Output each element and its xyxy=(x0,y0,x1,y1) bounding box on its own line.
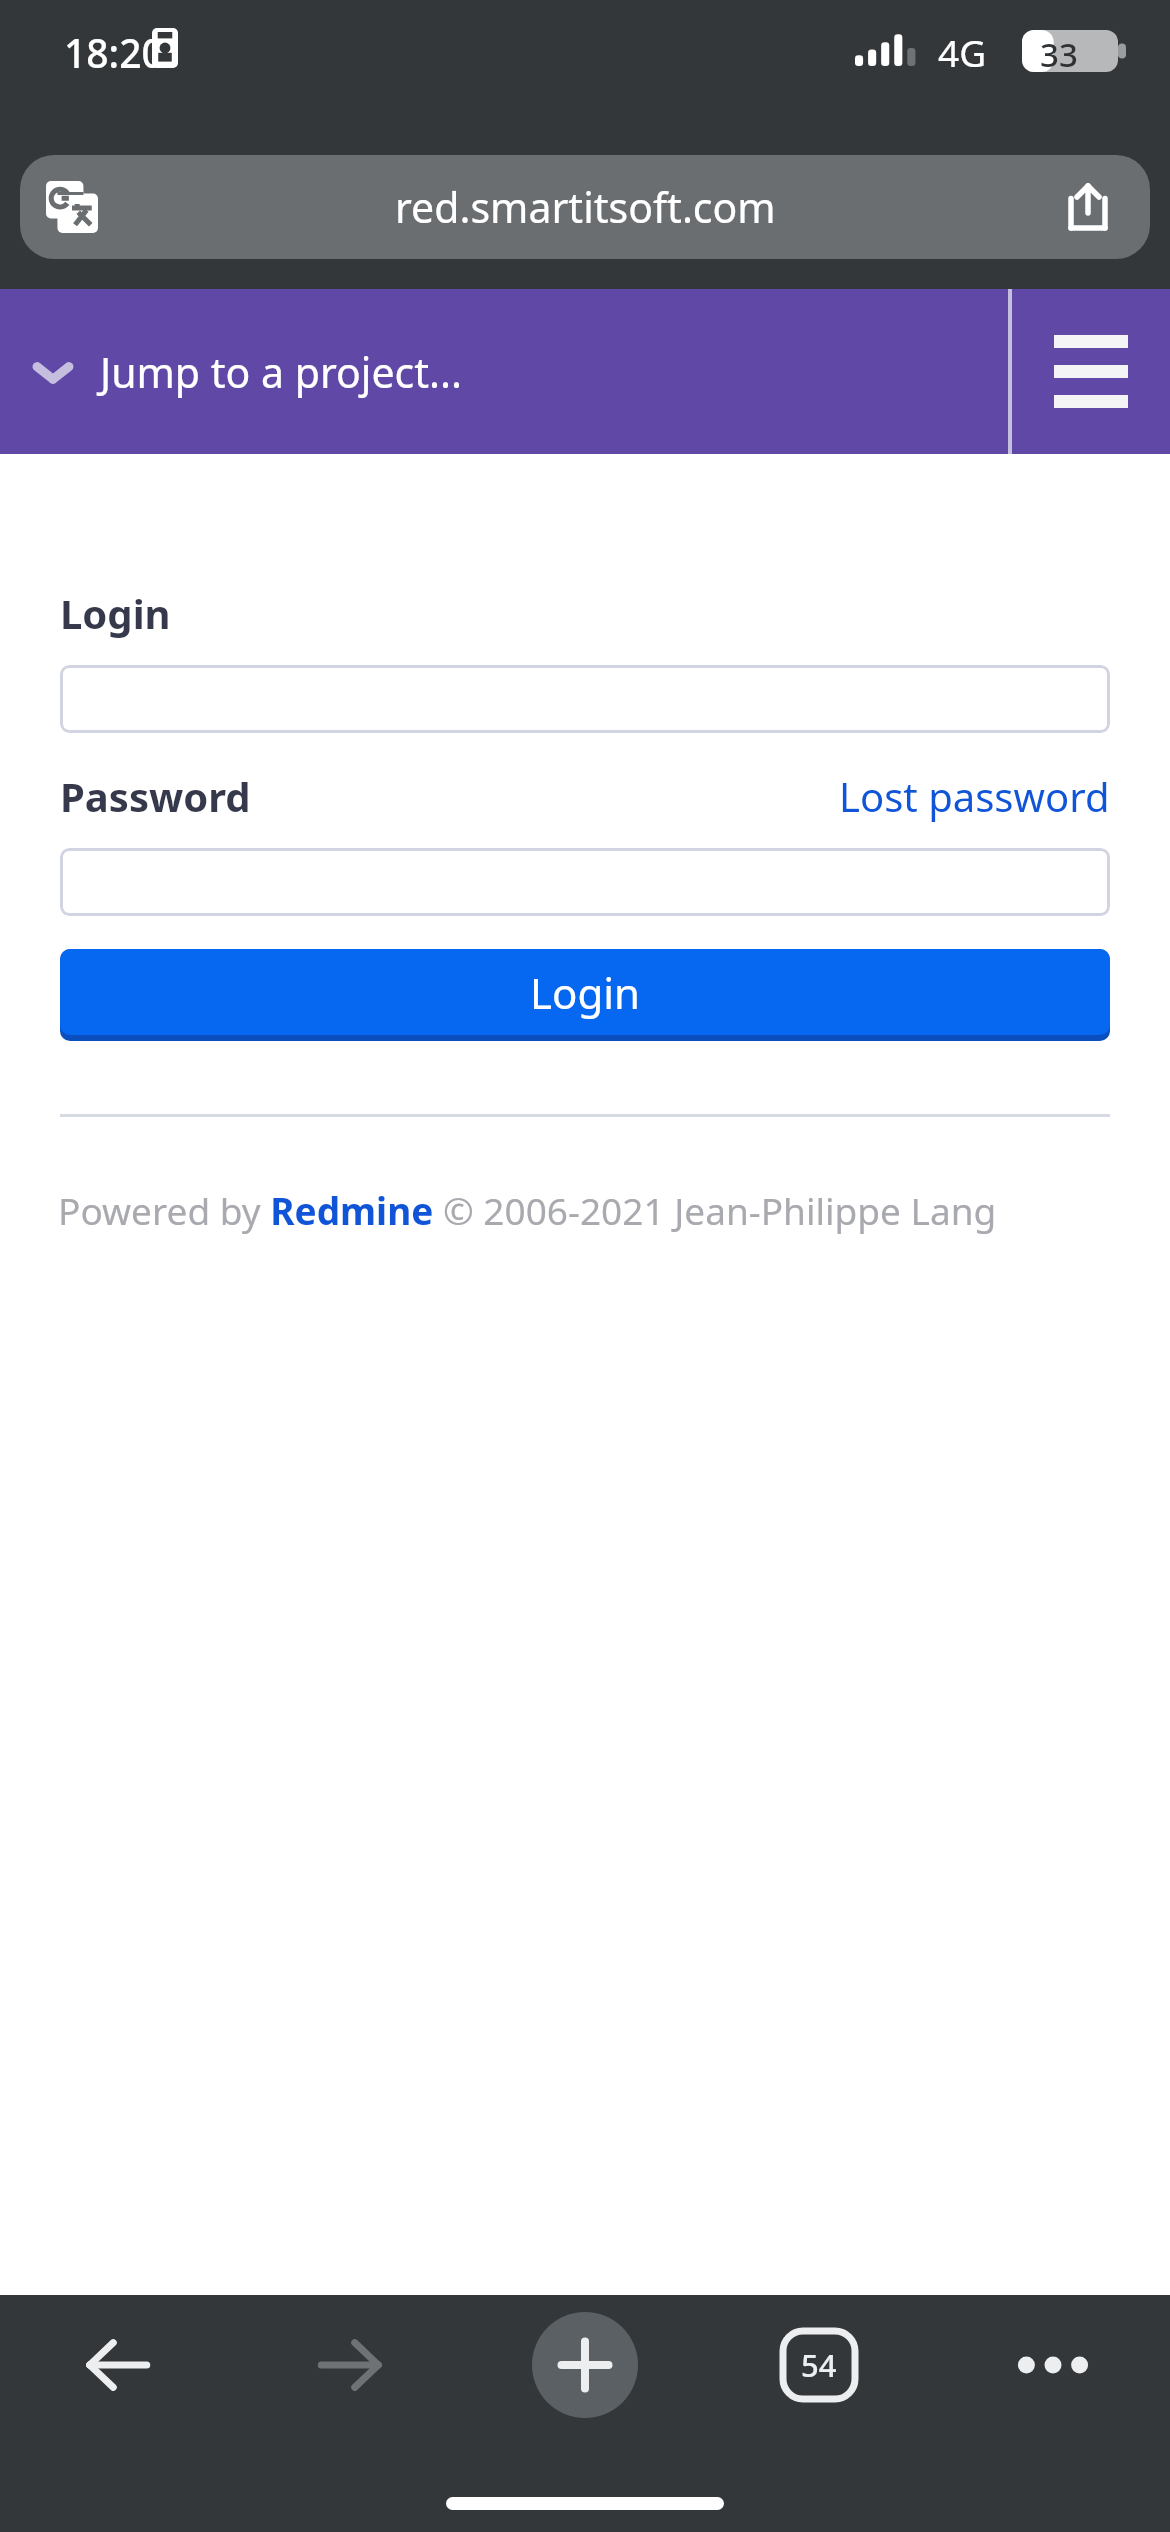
staticText: Lost password xyxy=(839,769,1110,823)
button[interactable]: Back xyxy=(0,2295,234,2435)
staticText: Password xyxy=(60,769,251,823)
staticText: 4G xyxy=(938,27,987,77)
staticText: 54 xyxy=(801,2344,837,2386)
staticText: Powered by Redmine © 2006-2021 Jean-Phil… xyxy=(58,1185,997,1235)
staticText: red.smartitsoft.com xyxy=(395,179,776,235)
button[interactable]: New tab xyxy=(468,2295,702,2435)
staticText: Login xyxy=(530,964,641,1021)
button[interactable]: Forward xyxy=(234,2295,468,2435)
button[interactable]: Share xyxy=(1052,171,1124,243)
staticText: Jump to a project... xyxy=(100,344,462,400)
button[interactable]: Menu xyxy=(1012,289,1170,454)
button[interactable]: More xyxy=(936,2295,1170,2435)
button[interactable] xyxy=(60,665,1110,733)
staticText: 33 xyxy=(1040,32,1078,77)
button[interactable]: Tabs xyxy=(702,2295,936,2435)
button[interactable]: Login xyxy=(60,949,1110,1041)
button[interactable] xyxy=(60,848,1110,916)
button[interactable]: red.smartitsoft.com xyxy=(20,155,1150,259)
button[interactable]: Jump to a project... xyxy=(0,289,1008,454)
button[interactable]: Lost password xyxy=(839,769,1110,823)
staticText: Login xyxy=(60,586,171,640)
staticText: 18:20 xyxy=(64,26,164,79)
button[interactable]: Translate page xyxy=(36,171,108,243)
